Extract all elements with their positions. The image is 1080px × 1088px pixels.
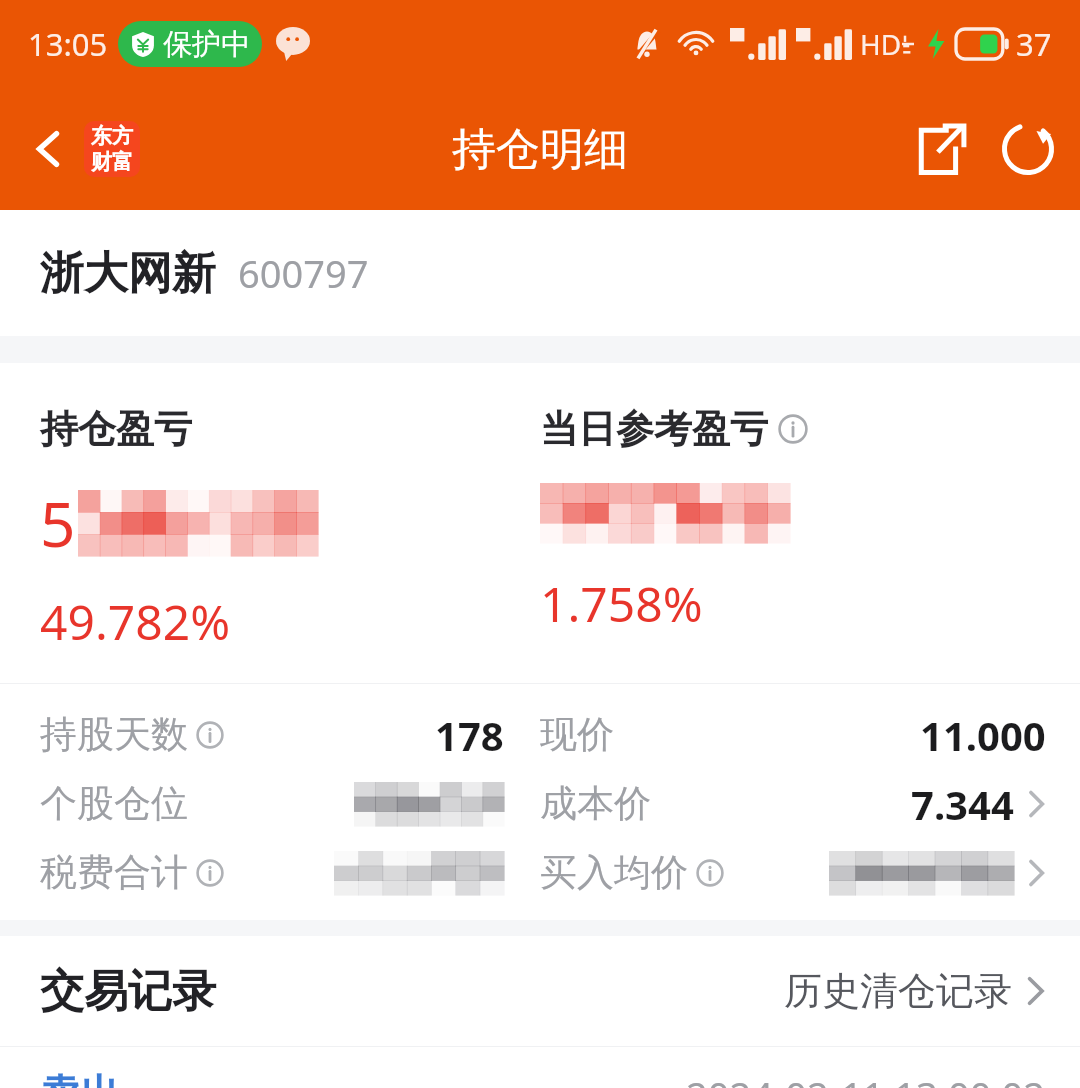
staticText: 交易记录 [40, 964, 216, 1019]
button[interactable]: 个股仓位 [40, 769, 504, 838]
button[interactable]: 卖出 [0, 1047, 1080, 1088]
button[interactable]: Refresh [982, 103, 1074, 195]
staticText: 49.782% [40, 589, 231, 654]
staticText: 买入均价 [540, 849, 688, 896]
staticText: 2024-02-11 13:00:02 [686, 1069, 1046, 1088]
button[interactable]: 税费合计 [40, 838, 504, 907]
staticText: 个股仓位 [40, 780, 188, 827]
staticText: 1.758% [540, 571, 703, 636]
staticText: 现价 [540, 711, 614, 758]
button[interactable]: Back [18, 118, 80, 180]
staticText: 持仓明细 [452, 122, 628, 177]
staticText: 历史清仓记录 [784, 967, 1012, 1015]
staticText: 持股天数 [40, 711, 188, 758]
staticText: 5 [40, 481, 76, 565]
button[interactable]: 持股天数 [40, 700, 504, 769]
button[interactable]: 买入均价 [540, 838, 1046, 907]
staticText: 13:05 [28, 23, 108, 65]
staticText: 保护中 [163, 26, 250, 63]
button[interactable]: East Money [84, 121, 140, 177]
button[interactable]: 成本价 [540, 769, 1046, 838]
staticText: 浙大网新 [40, 246, 216, 301]
staticText: 11.000 [920, 708, 1046, 762]
staticText: 成本价 [540, 780, 651, 827]
staticText: 税费合计 [40, 849, 188, 896]
button[interactable]: Share [898, 107, 982, 191]
button[interactable]: 现价 [540, 700, 1046, 769]
button[interactable]: 浙大网新 [0, 210, 1080, 336]
staticText: 600797 [238, 247, 369, 299]
staticText: 持仓盈亏 [40, 405, 192, 453]
staticText: 卖出 [40, 1069, 120, 1088]
staticText: 178 [435, 708, 504, 762]
staticText: 37 [1016, 23, 1052, 65]
staticText: HD [860, 25, 902, 63]
button[interactable]: 交易记录 [0, 936, 1080, 1046]
staticText: 财富 [91, 149, 133, 175]
staticText: 7.344 [911, 777, 1014, 831]
staticText: 当日参考盈亏 [540, 405, 768, 453]
staticText: 东方 [91, 123, 133, 149]
